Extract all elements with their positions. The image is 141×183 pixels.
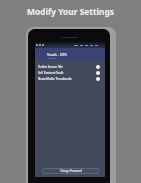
- staticText: Vault - EFS: [47, 52, 67, 57]
- staticText: Show Media Thumbnails: [38, 77, 72, 81]
- button[interactable]: Delete Source File: [35, 64, 105, 70]
- staticText: Settings: [48, 57, 57, 60]
- button[interactable]: Back: [37, 52, 42, 57]
- button[interactable]: Self Destruct Vault: [35, 70, 105, 76]
- staticText: Change Password: [60, 169, 82, 173]
- staticText: Modify Your Settings: [0, 6, 141, 17]
- button[interactable]: Show Media Thumbnails: [35, 76, 105, 82]
- button[interactable]: Change Password: [42, 168, 99, 174]
- staticText: Self Destruct Vault: [38, 71, 64, 75]
- staticText: Delete Source File: [38, 65, 63, 69]
